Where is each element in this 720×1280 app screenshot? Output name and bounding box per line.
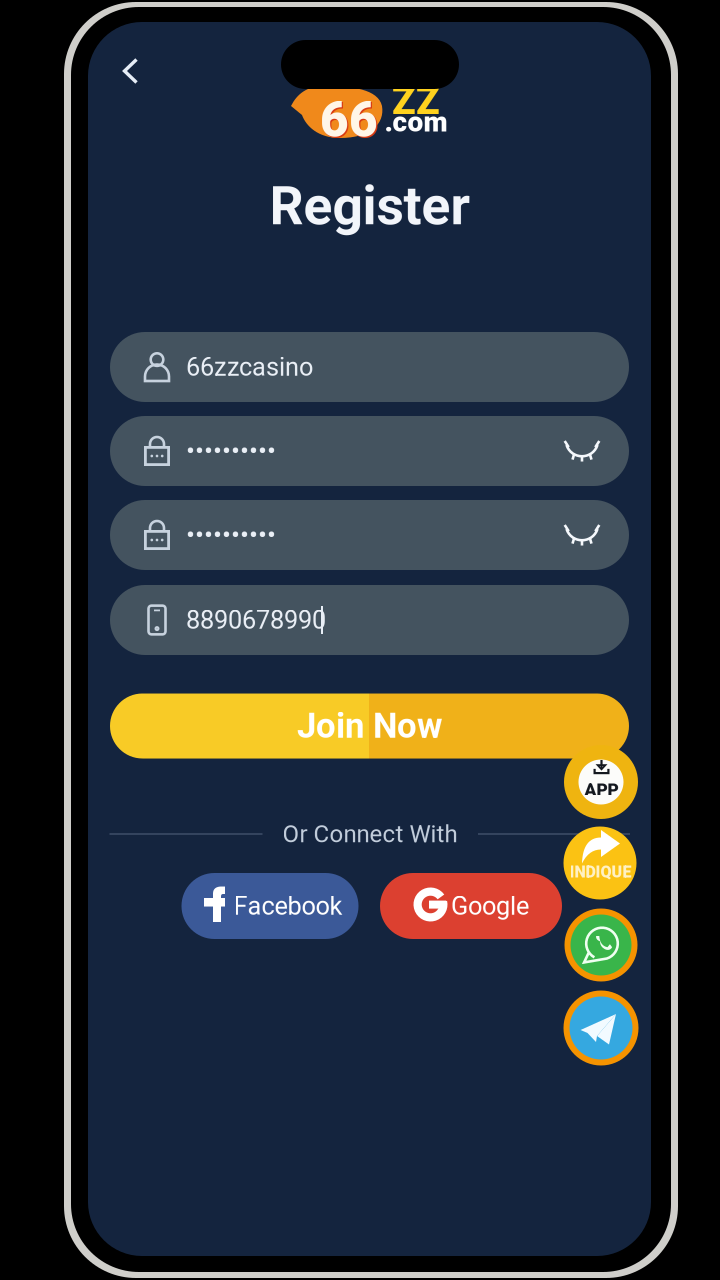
staticText: ZZ [392,78,440,124]
button[interactable]: Telegram [563,990,638,1065]
button[interactable]: Join Now [110,693,629,758]
staticText: APP [584,779,618,800]
button[interactable]: Show password [545,505,619,565]
button[interactable]: WhatsApp [564,908,637,981]
staticText: •••••••••• [186,435,276,467]
button[interactable]: Back [103,44,157,98]
staticText: Google [451,891,529,921]
staticText: 66 [321,92,379,150]
button[interactable]: Facebook [181,873,358,939]
staticText: 66zzcasino [186,352,313,382]
staticText: 8890678990 [186,605,326,635]
staticText: •••••••••• [186,519,276,551]
staticText: Register [269,175,470,237]
staticText: Join Now [297,706,442,746]
staticText: Facebook [233,891,342,921]
staticText: 66 [320,91,378,149]
button[interactable]: Download app [564,745,638,819]
button[interactable]: Show password [545,421,619,481]
staticText: INDIQUE [569,863,631,881]
staticText: .com [384,106,447,138]
button[interactable]: Google [380,873,562,939]
staticText: Or Connect With [282,820,457,848]
button[interactable]: Indique [563,826,636,899]
